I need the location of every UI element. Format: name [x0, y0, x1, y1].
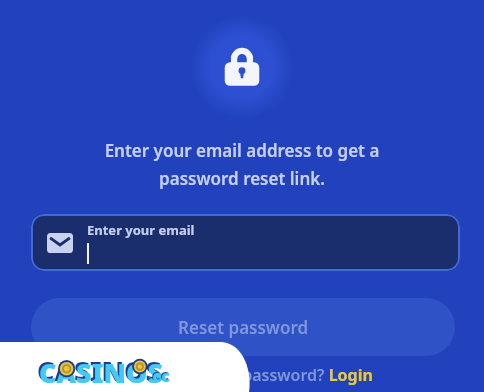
staticText: Enter your email address to get a passwo… [30, 139, 454, 190]
staticText: .cc [147, 364, 169, 386]
button[interactable]: Email [31, 214, 460, 271]
other: Email [47, 233, 73, 253]
staticText: .cc [148, 365, 170, 387]
staticText: CASINOS [39, 354, 164, 390]
staticText: Remember your password? Login [112, 364, 373, 386]
staticText: CASINOS [37, 352, 162, 388]
button[interactable]: Remember your password? Login [112, 364, 373, 386]
staticText: Enter your email [87, 221, 195, 239]
staticText: Reset password [178, 316, 309, 339]
button[interactable]: Reset password [31, 298, 455, 356]
